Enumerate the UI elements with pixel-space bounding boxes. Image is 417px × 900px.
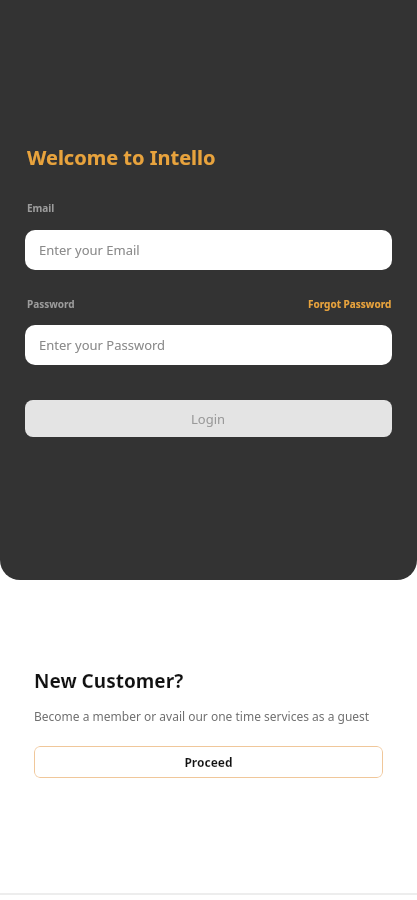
staticText: Proceed <box>184 754 233 770</box>
staticText: Email <box>27 201 55 215</box>
staticText: Forgot Password <box>308 297 392 311</box>
staticText: Become a member or avail our one time se… <box>34 708 383 724</box>
staticText: Welcome to Intello <box>27 144 216 171</box>
staticText: Password <box>27 297 75 311</box>
staticText: Enter your Password <box>39 336 166 354</box>
staticText: New Customer? <box>34 668 184 694</box>
button[interactable]: Forgot Password <box>308 297 392 311</box>
button[interactable]: Enter your Email <box>25 230 392 270</box>
button[interactable]: Login <box>25 400 392 437</box>
button[interactable]: Enter your Password <box>25 325 392 365</box>
button[interactable]: Proceed <box>34 746 383 778</box>
staticText: Enter your Email <box>39 241 140 259</box>
staticText: Login <box>191 410 226 428</box>
